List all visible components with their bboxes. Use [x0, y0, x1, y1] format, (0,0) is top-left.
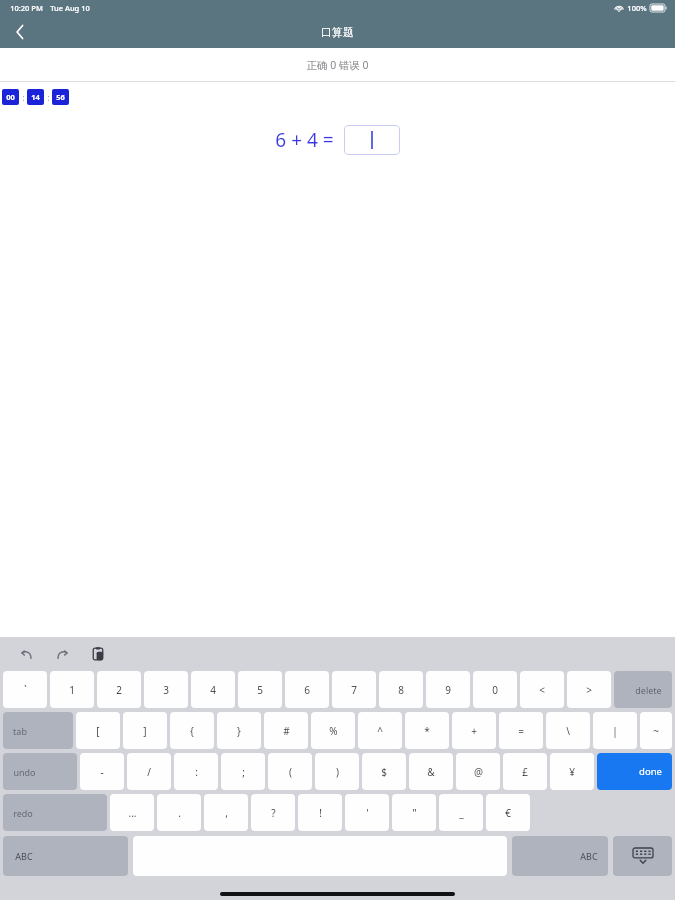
staticText: " — [412, 806, 417, 820]
button[interactable]: . — [157, 794, 201, 831]
staticText: 2 — [116, 683, 122, 697]
staticText: ! — [319, 806, 322, 820]
button[interactable]: > — [567, 671, 611, 708]
staticText: | — [612, 724, 618, 738]
button[interactable]: € — [486, 794, 530, 831]
staticText: 5 — [257, 683, 263, 697]
button[interactable]: ! — [298, 794, 342, 831]
staticText: 9 — [445, 683, 451, 697]
button[interactable]: ' — [345, 794, 389, 831]
button[interactable]: [ — [76, 712, 120, 749]
staticText: ABC — [15, 850, 33, 862]
staticText: 8 — [398, 683, 404, 697]
button[interactable]: , — [204, 794, 248, 831]
staticText: 7 — [351, 683, 357, 697]
button[interactable]: 0 — [473, 671, 517, 708]
staticText: ; — [242, 765, 245, 779]
button[interactable]: | — [593, 712, 637, 749]
button[interactable]: 8 — [379, 671, 423, 708]
button[interactable]: = — [499, 712, 543, 749]
button[interactable]: Hide keyboard — [613, 836, 672, 876]
button[interactable]: ABC — [3, 836, 128, 876]
staticText: undo — [13, 766, 36, 778]
button[interactable]: delete — [614, 671, 672, 708]
staticText: [ — [96, 724, 100, 738]
staticText: / — [147, 765, 151, 779]
button[interactable]: + — [452, 712, 496, 749]
staticText: £ — [522, 765, 528, 779]
staticText: ¥ — [569, 765, 575, 779]
button[interactable]: - — [80, 753, 124, 790]
button[interactable]: 00 — [2, 89, 19, 105]
button[interactable]: / — [127, 753, 171, 790]
button[interactable]: £ — [503, 753, 547, 790]
staticText: : — [195, 765, 198, 779]
button[interactable]: Redo — [50, 642, 74, 666]
button[interactable]: : — [174, 753, 218, 790]
staticText: - — [100, 765, 104, 779]
staticText: ~ — [653, 724, 659, 738]
button[interactable]: 7 — [332, 671, 376, 708]
button[interactable]: ` — [3, 671, 47, 708]
button[interactable]: 9 — [426, 671, 470, 708]
staticText: & — [427, 765, 435, 779]
button[interactable]: % — [311, 712, 355, 749]
staticText: 正确 0 错误 0 — [306, 58, 369, 72]
button[interactable]: Paste — [86, 642, 110, 666]
button[interactable]: ¥ — [550, 753, 594, 790]
button[interactable]: Undo — [14, 642, 38, 666]
button[interactable]: { — [170, 712, 214, 749]
button[interactable]: ( — [268, 753, 312, 790]
button[interactable]: ... — [110, 794, 154, 831]
staticText: % — [329, 724, 338, 738]
staticText: + — [471, 724, 477, 738]
button[interactable]: 6 — [285, 671, 329, 708]
staticText: @ — [474, 765, 483, 779]
staticText: done — [639, 765, 662, 778]
button[interactable]: done — [597, 753, 672, 790]
button[interactable]: 1 — [50, 671, 94, 708]
button[interactable]: } — [217, 712, 261, 749]
staticText: $ — [381, 765, 387, 779]
button[interactable]: 56 — [52, 89, 69, 105]
button[interactable]: ABC — [512, 836, 608, 876]
button[interactable]: 3 — [144, 671, 188, 708]
button[interactable]: # — [264, 712, 308, 749]
button[interactable]: @ — [456, 753, 500, 790]
button[interactable]: ~ — [640, 712, 672, 749]
button[interactable]: _ — [439, 794, 483, 831]
staticText: delete — [635, 684, 662, 696]
button[interactable]: ] — [123, 712, 167, 749]
staticText: } — [237, 724, 241, 738]
staticText: 14 — [31, 92, 40, 102]
button[interactable]: < — [520, 671, 564, 708]
staticText: 1 — [69, 683, 75, 697]
staticText: \ — [566, 724, 570, 738]
button[interactable]: ) — [315, 753, 359, 790]
button[interactable]: 14 — [27, 89, 44, 105]
staticText: redo — [13, 807, 33, 819]
button[interactable]: tab — [3, 712, 73, 749]
button[interactable]: redo — [3, 794, 107, 831]
staticText: 6 + 4 = — [275, 127, 334, 153]
staticText: 100% — [627, 3, 647, 13]
button[interactable]: ^ — [358, 712, 402, 749]
button[interactable]: & — [409, 753, 453, 790]
button[interactable]: " — [392, 794, 436, 831]
button[interactable]: * — [405, 712, 449, 749]
button[interactable]: $ — [362, 753, 406, 790]
button[interactable] — [344, 125, 400, 155]
button[interactable]: 5 — [238, 671, 282, 708]
button[interactable]: Back — [0, 16, 40, 48]
button[interactable]: \ — [546, 712, 590, 749]
button[interactable]: 4 — [191, 671, 235, 708]
staticText: ... — [128, 806, 137, 820]
staticText: : — [47, 92, 50, 103]
button[interactable]: ; — [221, 753, 265, 790]
staticText: { — [190, 724, 194, 738]
button[interactable]: undo — [3, 753, 77, 790]
staticText: , — [225, 806, 228, 820]
button[interactable]: 2 — [97, 671, 141, 708]
button[interactable]: ? — [251, 794, 295, 831]
